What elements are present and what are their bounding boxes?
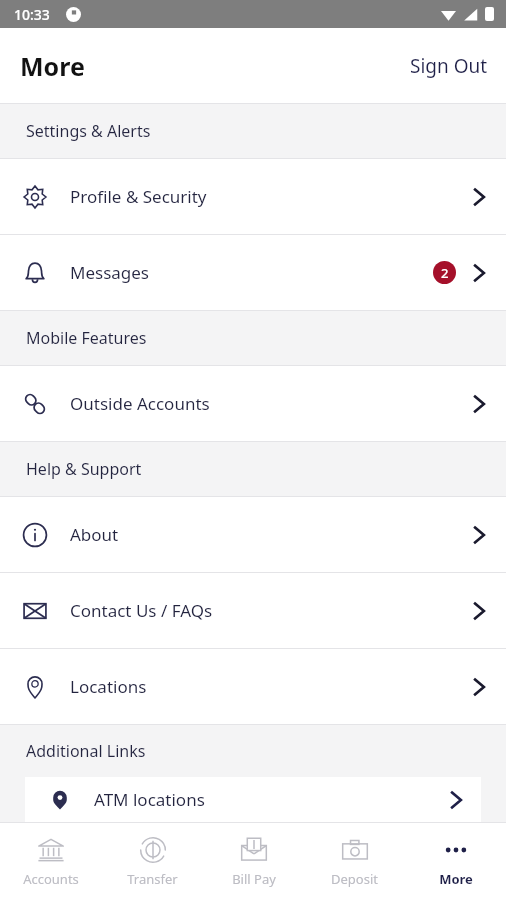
staticText: Transfer: [127, 870, 178, 888]
button[interactable]: Deposit: [304, 823, 405, 900]
other: Deposit: [341, 836, 369, 864]
staticText: Settings & Alerts: [26, 120, 151, 142]
staticText: ATM locations: [94, 788, 205, 811]
button[interactable]: Outside Accounts: [0, 366, 506, 441]
button[interactable]: Bill Pay: [203, 823, 304, 900]
staticText: Contact Us / FAQs: [70, 599, 213, 622]
staticText: 10:33: [14, 5, 50, 24]
other: Profile and Security: [22, 184, 48, 210]
staticText: Additional Links: [26, 740, 146, 762]
other: About: [22, 522, 48, 548]
other: Contact Us and FAQs: [22, 598, 48, 624]
staticText: 2: [441, 264, 449, 282]
button[interactable]: About: [0, 497, 506, 572]
button[interactable]: ATM locations: [25, 777, 481, 822]
other: Locations: [22, 674, 48, 700]
other: Bill Pay: [240, 836, 268, 864]
staticText: About: [70, 523, 119, 546]
other: Accounts: [37, 836, 65, 864]
staticText: Accounts: [23, 870, 79, 888]
staticText: Deposit: [331, 870, 378, 888]
staticText: Sign Out: [410, 53, 488, 79]
staticText: Locations: [70, 675, 147, 698]
staticText: Bill Pay: [232, 870, 276, 888]
staticText: Profile & Security: [70, 185, 207, 208]
staticText: Help & Support: [26, 458, 142, 480]
button[interactable]: Accounts: [0, 823, 102, 900]
staticText: More: [20, 49, 85, 83]
button[interactable]: More: [405, 823, 506, 900]
other: Transfer: [139, 836, 167, 864]
button[interactable]: Profile and Security: [0, 159, 506, 234]
button[interactable]: Transfer: [102, 823, 203, 900]
staticText: Messages: [70, 261, 150, 284]
button[interactable]: Messages: [0, 235, 506, 310]
button[interactable]: Locations: [0, 649, 506, 724]
other: More: [442, 836, 470, 864]
button[interactable]: Sign Out: [392, 43, 506, 89]
other: Messages: [22, 260, 48, 286]
staticText: More: [439, 870, 473, 888]
button[interactable]: Contact Us and FAQs: [0, 573, 506, 648]
other: Outside Accounts: [22, 391, 48, 417]
staticText: Outside Accounts: [70, 392, 210, 415]
staticText: Mobile Features: [26, 327, 147, 349]
